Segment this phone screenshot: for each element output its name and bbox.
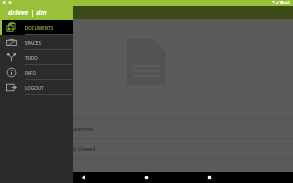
button[interactable]: Recent apps [204, 172, 215, 183]
staticText: DOCUMENTS [25, 25, 54, 31]
button[interactable]: LOGOUT [0, 80, 73, 95]
staticText: Recently Viewed [56, 145, 96, 152]
button[interactable]: SPACES [0, 35, 73, 50]
staticText: INFO [25, 70, 37, 76]
staticText: drivve | dm [8, 8, 47, 17]
button[interactable]: INFO [0, 65, 73, 80]
staticText: 14:44 [279, 0, 290, 6]
button[interactable]: Recently Viewed [0, 139, 293, 158]
button[interactable]: Back [78, 172, 89, 183]
button[interactable]: Saved Searches [0, 119, 293, 138]
button[interactable]: DOCUMENTS [0, 20, 73, 35]
button[interactable]: TODO [0, 50, 73, 65]
staticText: TODO [25, 55, 38, 61]
staticText: Saved Searches [56, 125, 94, 132]
staticText: SPACES [25, 40, 41, 46]
staticText: LOGOUT [25, 85, 44, 91]
button[interactable]: Home [141, 172, 152, 183]
